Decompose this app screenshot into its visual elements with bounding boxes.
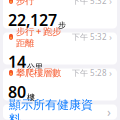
staticText: 下午 5:32 [72,32,107,42]
staticText: 步行 + 跑步距離 [16,25,61,49]
staticText: 步 [58,20,66,30]
button[interactable]: 顯示所有健康資料 [3,104,117,119]
staticText: › [109,67,112,79]
staticText: 樓 [27,92,35,102]
staticText: 攀爬樓層數 [16,67,61,79]
staticText: 14 [8,51,26,72]
button[interactable]: 步行 [3,0,117,28]
button[interactable]: 步行 + 跑步距離 [3,32,117,64]
staticText: › [107,104,111,120]
staticText: › [109,0,112,7]
staticText: 下午 5:32 [72,0,107,6]
staticText: 下午 5:28 [72,68,107,78]
staticText: 80 [8,81,26,102]
staticText: 公里 [27,62,43,72]
staticText: 顯示所有健康資料 [9,97,93,120]
button[interactable]: 攀爬樓層數 [3,68,117,100]
staticText: › [109,31,112,43]
staticText: 22,127 [8,9,57,30]
staticText: 步行 [16,0,34,7]
